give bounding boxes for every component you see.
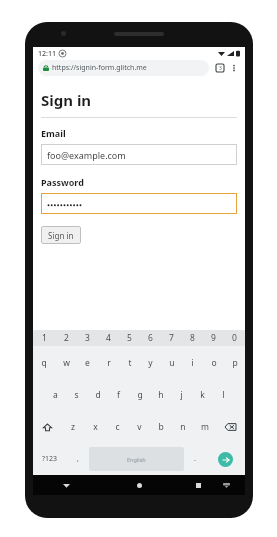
button[interactable]: 7 [161,330,182,346]
button[interactable]: 5 [119,330,140,346]
staticText: a [53,389,58,401]
button[interactable]: 1 [33,330,55,346]
staticText: Sign in [48,230,74,241]
button[interactable]: d [87,379,108,411]
button[interactable]: q [33,346,55,379]
button[interactable]: h [150,379,171,411]
button[interactable]: Shift [33,411,62,443]
staticText: k [200,389,205,401]
button[interactable]: o [203,346,224,379]
staticText: d [95,389,101,401]
staticText: 0 [232,332,237,344]
staticText: v [137,421,142,433]
staticText: n [180,421,186,433]
staticText: g [137,389,143,401]
staticText: ?123 [42,454,58,464]
button[interactable]: e [77,346,98,379]
staticText: r [107,357,111,369]
staticText: e [85,357,90,369]
staticText: 12:11 [38,49,56,59]
button[interactable]: 0 [224,330,245,346]
button[interactable]: 9 [203,330,224,346]
button[interactable]: c [106,411,128,443]
button[interactable] [41,193,237,214]
staticText: p [232,357,238,369]
staticText: , [77,454,79,464]
button[interactable]: l [213,379,234,411]
staticText: c [115,421,120,433]
button[interactable]: 6 [140,330,161,346]
button[interactable]: foo@example.com [41,144,237,165]
staticText: b [158,421,164,433]
button[interactable]: Go [218,452,233,467]
staticText: t [128,357,132,369]
button[interactable]: Sign in [41,226,81,244]
button[interactable]: j [171,379,192,411]
button[interactable]: b [150,411,172,443]
button[interactable]: p [224,346,245,379]
button[interactable]: https://signin-form.glitch.me [38,60,209,76]
button[interactable]: u [161,346,182,379]
button[interactable]: t [119,346,140,379]
button[interactable]: s [66,379,87,411]
button[interactable]: r [98,346,119,379]
button[interactable]: Back [59,478,73,492]
staticText: j [180,389,183,401]
button[interactable]: g [129,379,150,411]
staticText: x [93,421,98,433]
staticText: . [194,454,196,464]
staticText: 4 [106,332,111,344]
button[interactable]: More options [228,62,240,74]
button[interactable]: Tabs [214,62,226,74]
button[interactable]: v [128,411,150,443]
staticText: 6 [148,332,153,344]
button[interactable]: Recents [191,478,205,492]
staticText: Sign in [41,90,92,110]
staticText: 5 [127,332,132,344]
staticText: English [127,456,146,463]
button[interactable]: i [182,346,203,379]
staticText: f [117,389,120,401]
staticText: q [41,357,47,369]
button[interactable]: m [194,411,216,443]
staticText: o [211,357,217,369]
button[interactable]: w [55,346,77,379]
button[interactable]: z [62,411,84,443]
staticText: h [158,389,164,401]
button[interactable]: 3 [77,330,98,346]
staticText: 3 [85,332,90,344]
button[interactable]: n [172,411,194,443]
button[interactable]: English [89,447,184,471]
button[interactable]: Hide keyboard [219,478,233,492]
staticText: i [191,357,194,369]
staticText: Password [41,176,84,188]
button[interactable]: Backspace [216,411,245,443]
staticText: 8 [190,332,195,344]
button[interactable]: k [192,379,213,411]
button[interactable]: 2 [55,330,77,346]
staticText: w [63,357,70,369]
staticText: 2 [64,332,69,344]
button[interactable]: a [45,379,66,411]
button[interactable]: x [84,411,106,443]
staticText: 1 [42,332,47,344]
staticText: 3 [219,65,222,72]
button[interactable]: 8 [182,330,203,346]
staticText: u [169,357,175,369]
staticText: https://signin-form.glitch.me [52,63,147,73]
button[interactable]: y [140,346,161,379]
staticText: z [71,421,75,433]
button[interactable]: Home [132,478,146,492]
button[interactable]: 4 [98,330,119,346]
staticText: l [222,389,225,401]
button[interactable]: ?123 [33,443,67,475]
staticText: y [148,357,153,369]
staticText: 7 [169,332,174,344]
staticText: 9 [211,332,216,344]
button[interactable]: , [67,443,89,475]
button[interactable]: f [108,379,129,411]
staticText: s [74,389,79,401]
staticText: foo@example.com [47,149,126,161]
staticText: m [201,421,209,433]
